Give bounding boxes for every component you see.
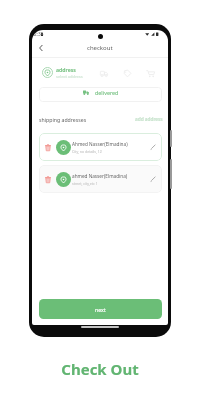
button[interactable]: Delete address — [45, 176, 51, 183]
button[interactable]: Delete address — [45, 144, 51, 151]
staticText: delivered — [95, 89, 119, 96]
staticText: 2:35 — [34, 31, 44, 37]
button[interactable]: Edit address — [150, 144, 156, 150]
button[interactable]: add address — [135, 116, 163, 123]
staticText: next — [95, 306, 106, 313]
staticText: checkout — [87, 44, 113, 52]
button[interactable]: next — [39, 299, 162, 319]
staticText: select address — [56, 74, 83, 79]
button[interactable]: Delete address — [39, 133, 162, 161]
staticText: address — [56, 66, 76, 73]
staticText: Check Out — [61, 359, 139, 379]
button[interactable]: Delete address — [39, 165, 162, 193]
staticText: ahmed Nasser(Elmadina) — [72, 173, 128, 179]
staticText: add address — [135, 116, 163, 123]
staticText: City, no details, 12 — [72, 149, 102, 154]
button[interactable]: delivered — [39, 87, 162, 102]
button[interactable]: Edit address — [150, 176, 156, 182]
button[interactable]: Back — [35, 42, 47, 54]
staticText: shipping addresses — [39, 116, 87, 123]
staticText: Ahmed Nasser(Elmadina) — [72, 141, 128, 147]
staticText: street, city,etc 1 — [72, 181, 98, 186]
